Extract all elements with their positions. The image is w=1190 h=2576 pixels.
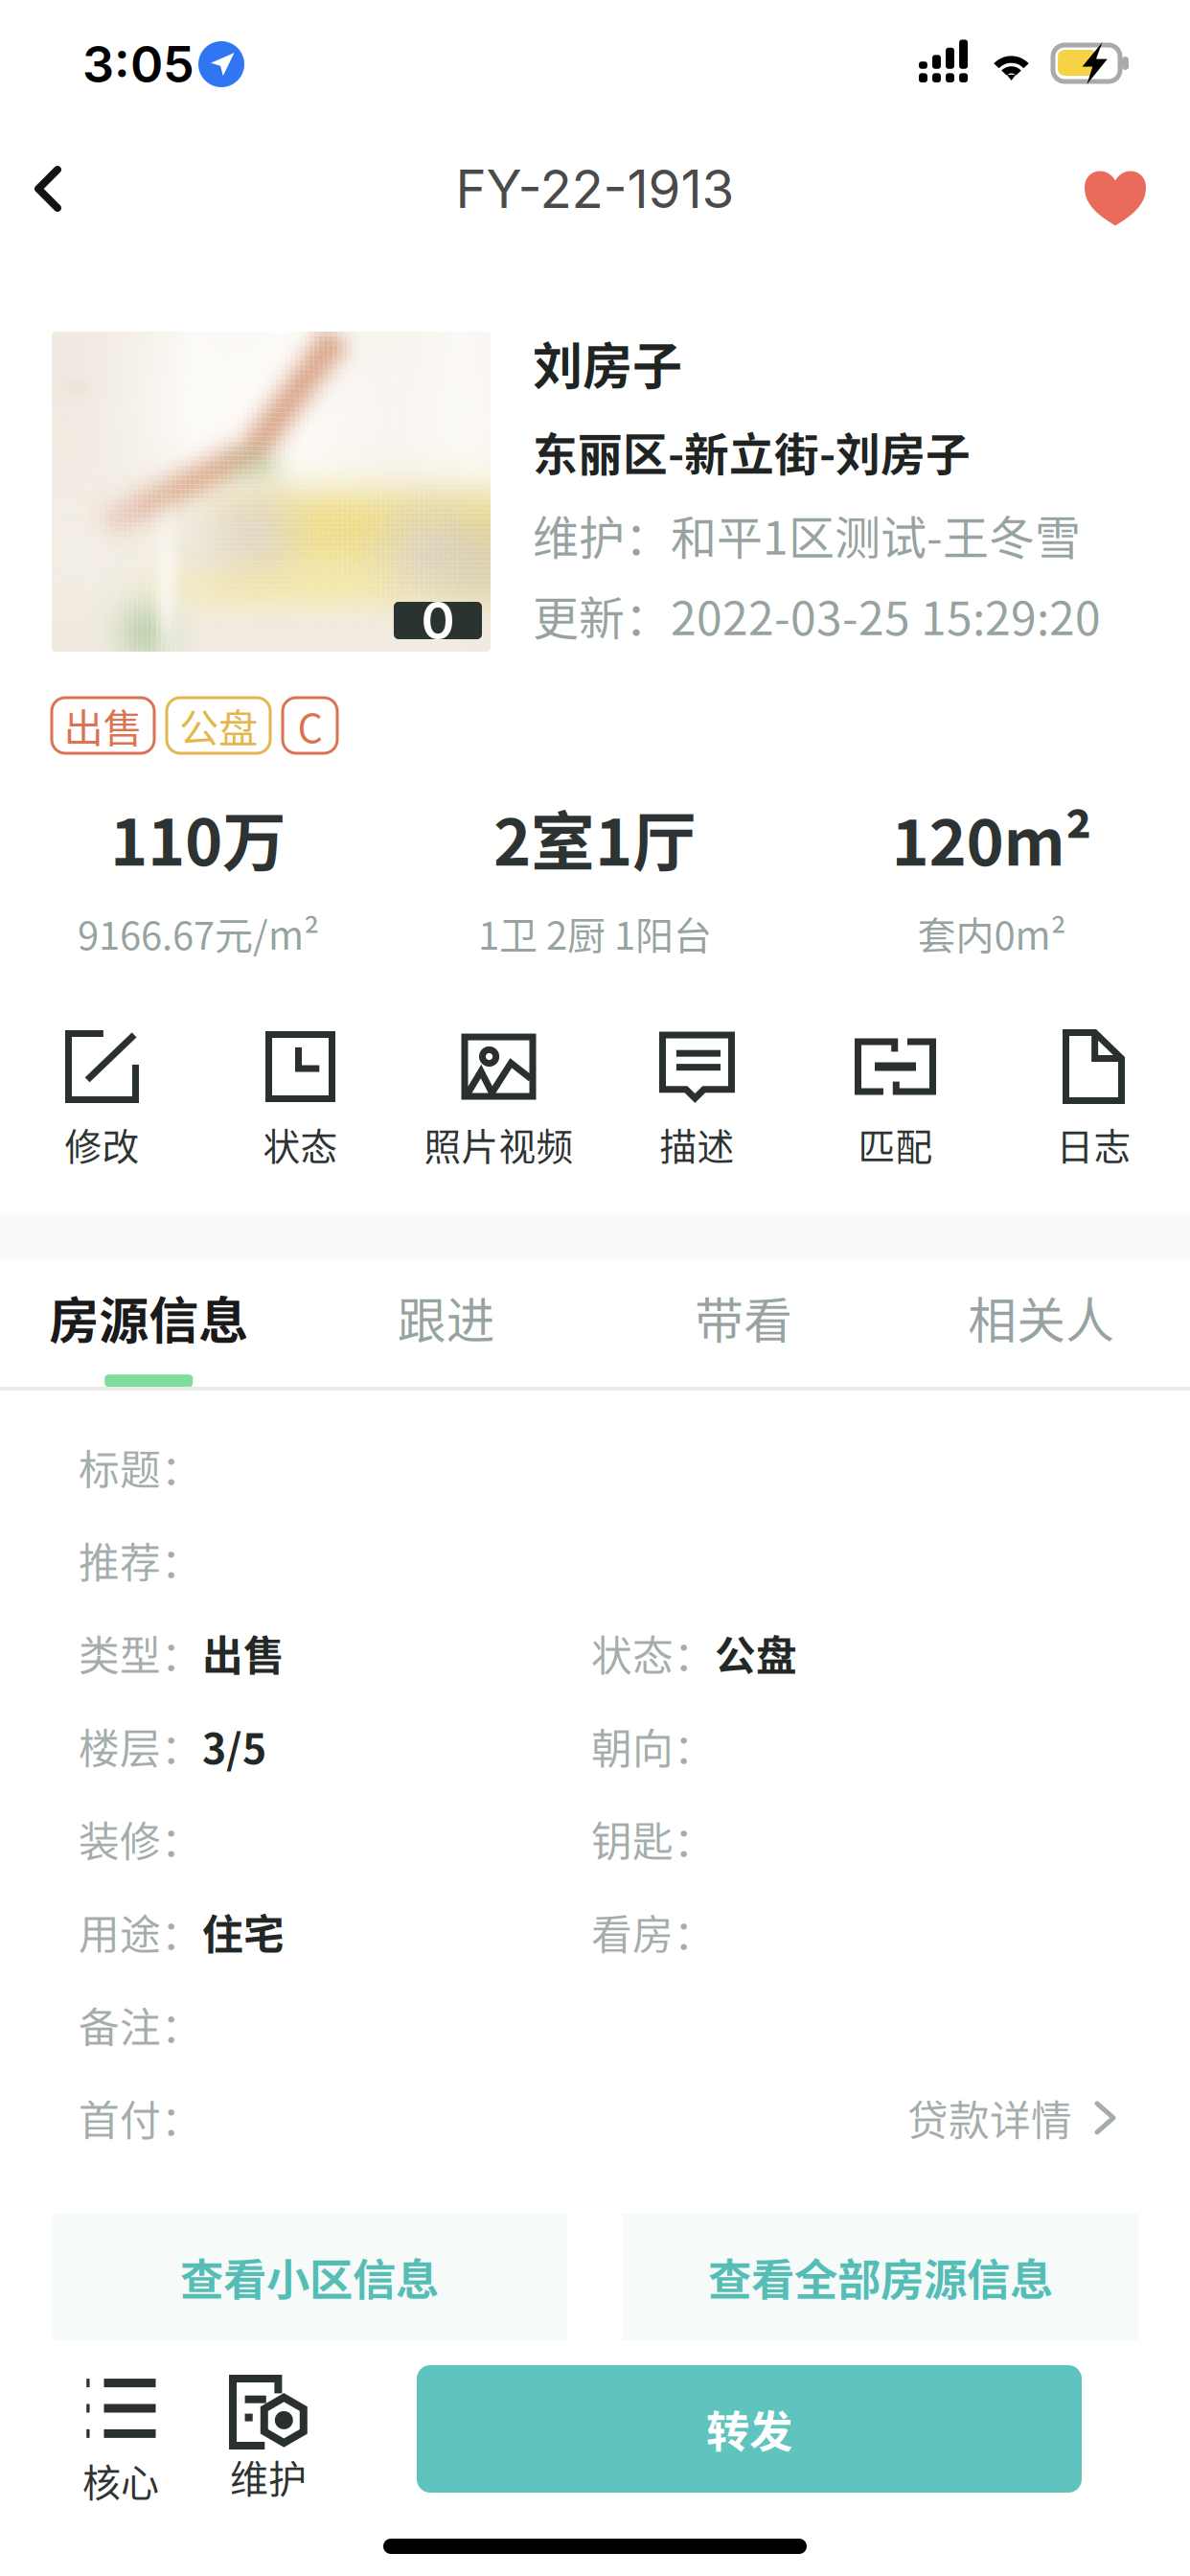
staticText: 带看 bbox=[695, 1282, 793, 1353]
staticText: 维护：和平1区测试-王冬雪 bbox=[533, 501, 1081, 568]
staticText: 跟进 bbox=[397, 1282, 495, 1353]
staticText: C bbox=[297, 697, 322, 754]
staticText: 钥匙： bbox=[591, 1809, 715, 1869]
staticText: 首付： bbox=[79, 2088, 202, 2147]
button[interactable]: 查看小区信息 bbox=[52, 2214, 567, 2340]
button[interactable]: 修改 bbox=[3, 1032, 201, 1171]
staticText: 查看全部房源信息 bbox=[708, 2246, 1053, 2308]
staticText: 2室1厅 bbox=[493, 792, 697, 884]
button[interactable]: 查看全部房源信息 bbox=[623, 2214, 1138, 2340]
staticText: 更新：2022-03-25 15:29:20 bbox=[533, 582, 1101, 648]
staticText: 查看小区信息 bbox=[180, 2246, 439, 2308]
staticText: 标题： bbox=[79, 1437, 202, 1497]
button[interactable]: 跟进 bbox=[297, 1282, 595, 1386]
staticText: 状态 bbox=[263, 1117, 338, 1171]
staticText: 刘房子 bbox=[533, 327, 682, 399]
button[interactable]: 带看 bbox=[595, 1282, 892, 1386]
staticText: 装修： bbox=[79, 1809, 202, 1869]
button[interactable]: 贷款详情 bbox=[907, 2088, 1113, 2147]
button[interactable]: 出售 bbox=[52, 698, 154, 753]
staticText: 状态： bbox=[591, 1623, 715, 1683]
staticText: 朝向： bbox=[591, 1716, 715, 1776]
staticText: 住宅 bbox=[202, 1902, 285, 1962]
button[interactable]: 相关人 bbox=[892, 1282, 1190, 1386]
staticText: FY-22-1913 bbox=[456, 157, 734, 220]
button[interactable]: 照片视频 bbox=[400, 1032, 598, 1171]
staticText: 维护 bbox=[230, 2449, 307, 2504]
staticText: 房源信息 bbox=[49, 1281, 248, 1353]
staticText: 贷款详情 bbox=[907, 2088, 1072, 2147]
button[interactable]: 房源信息 bbox=[0, 1281, 297, 1387]
staticText: 相关人 bbox=[968, 1282, 1114, 1353]
staticText: 出售 bbox=[202, 1623, 285, 1683]
staticText: 东丽区-新立街-刘房子 bbox=[533, 419, 971, 484]
staticText: 120m² bbox=[892, 792, 1092, 884]
staticText: 出售 bbox=[64, 697, 142, 754]
button[interactable]: 公盘 bbox=[167, 698, 270, 753]
staticText: 用途： bbox=[79, 1902, 202, 1962]
button[interactable]: 状态 bbox=[201, 1032, 400, 1171]
staticText: 修改 bbox=[65, 1117, 139, 1171]
staticText: 看房： bbox=[591, 1902, 715, 1962]
staticText: 3/5 bbox=[202, 1716, 266, 1776]
button[interactable]: 匹配 bbox=[796, 1032, 995, 1171]
button[interactable]: 转发 bbox=[417, 2365, 1082, 2493]
staticText: 公盘 bbox=[179, 697, 258, 754]
staticText: 描述 bbox=[660, 1117, 734, 1171]
staticText: 0 bbox=[421, 590, 455, 651]
button[interactable]: 维护 bbox=[206, 2375, 331, 2497]
button[interactable]: Favorite bbox=[1058, 146, 1173, 251]
staticText: 日志 bbox=[1056, 1117, 1131, 1171]
staticText: 楼层： bbox=[79, 1716, 202, 1776]
staticText: 公盘 bbox=[715, 1623, 797, 1683]
button[interactable]: 核心 bbox=[58, 2379, 183, 2501]
staticText: 3:05 bbox=[82, 34, 195, 94]
button[interactable]: 描述 bbox=[598, 1032, 796, 1171]
staticText: 匹配 bbox=[858, 1117, 933, 1171]
staticText: 照片视频 bbox=[424, 1117, 573, 1171]
button[interactable]: C bbox=[283, 698, 337, 753]
staticText: 类型： bbox=[79, 1623, 202, 1683]
staticText: 转发 bbox=[706, 2397, 792, 2460]
button[interactable]: 日志 bbox=[995, 1032, 1190, 1171]
staticText: 核心 bbox=[82, 2452, 159, 2508]
button[interactable]: Back bbox=[0, 136, 96, 241]
staticText: 推荐： bbox=[79, 1530, 202, 1590]
staticText: 110万 bbox=[110, 792, 286, 884]
staticText: 1卫 2厨 1阳台 bbox=[478, 905, 712, 961]
staticText: 备注： bbox=[79, 1995, 202, 2054]
staticText: 套内0m² bbox=[917, 905, 1066, 961]
staticText: 9166.67元/m² bbox=[78, 905, 319, 961]
